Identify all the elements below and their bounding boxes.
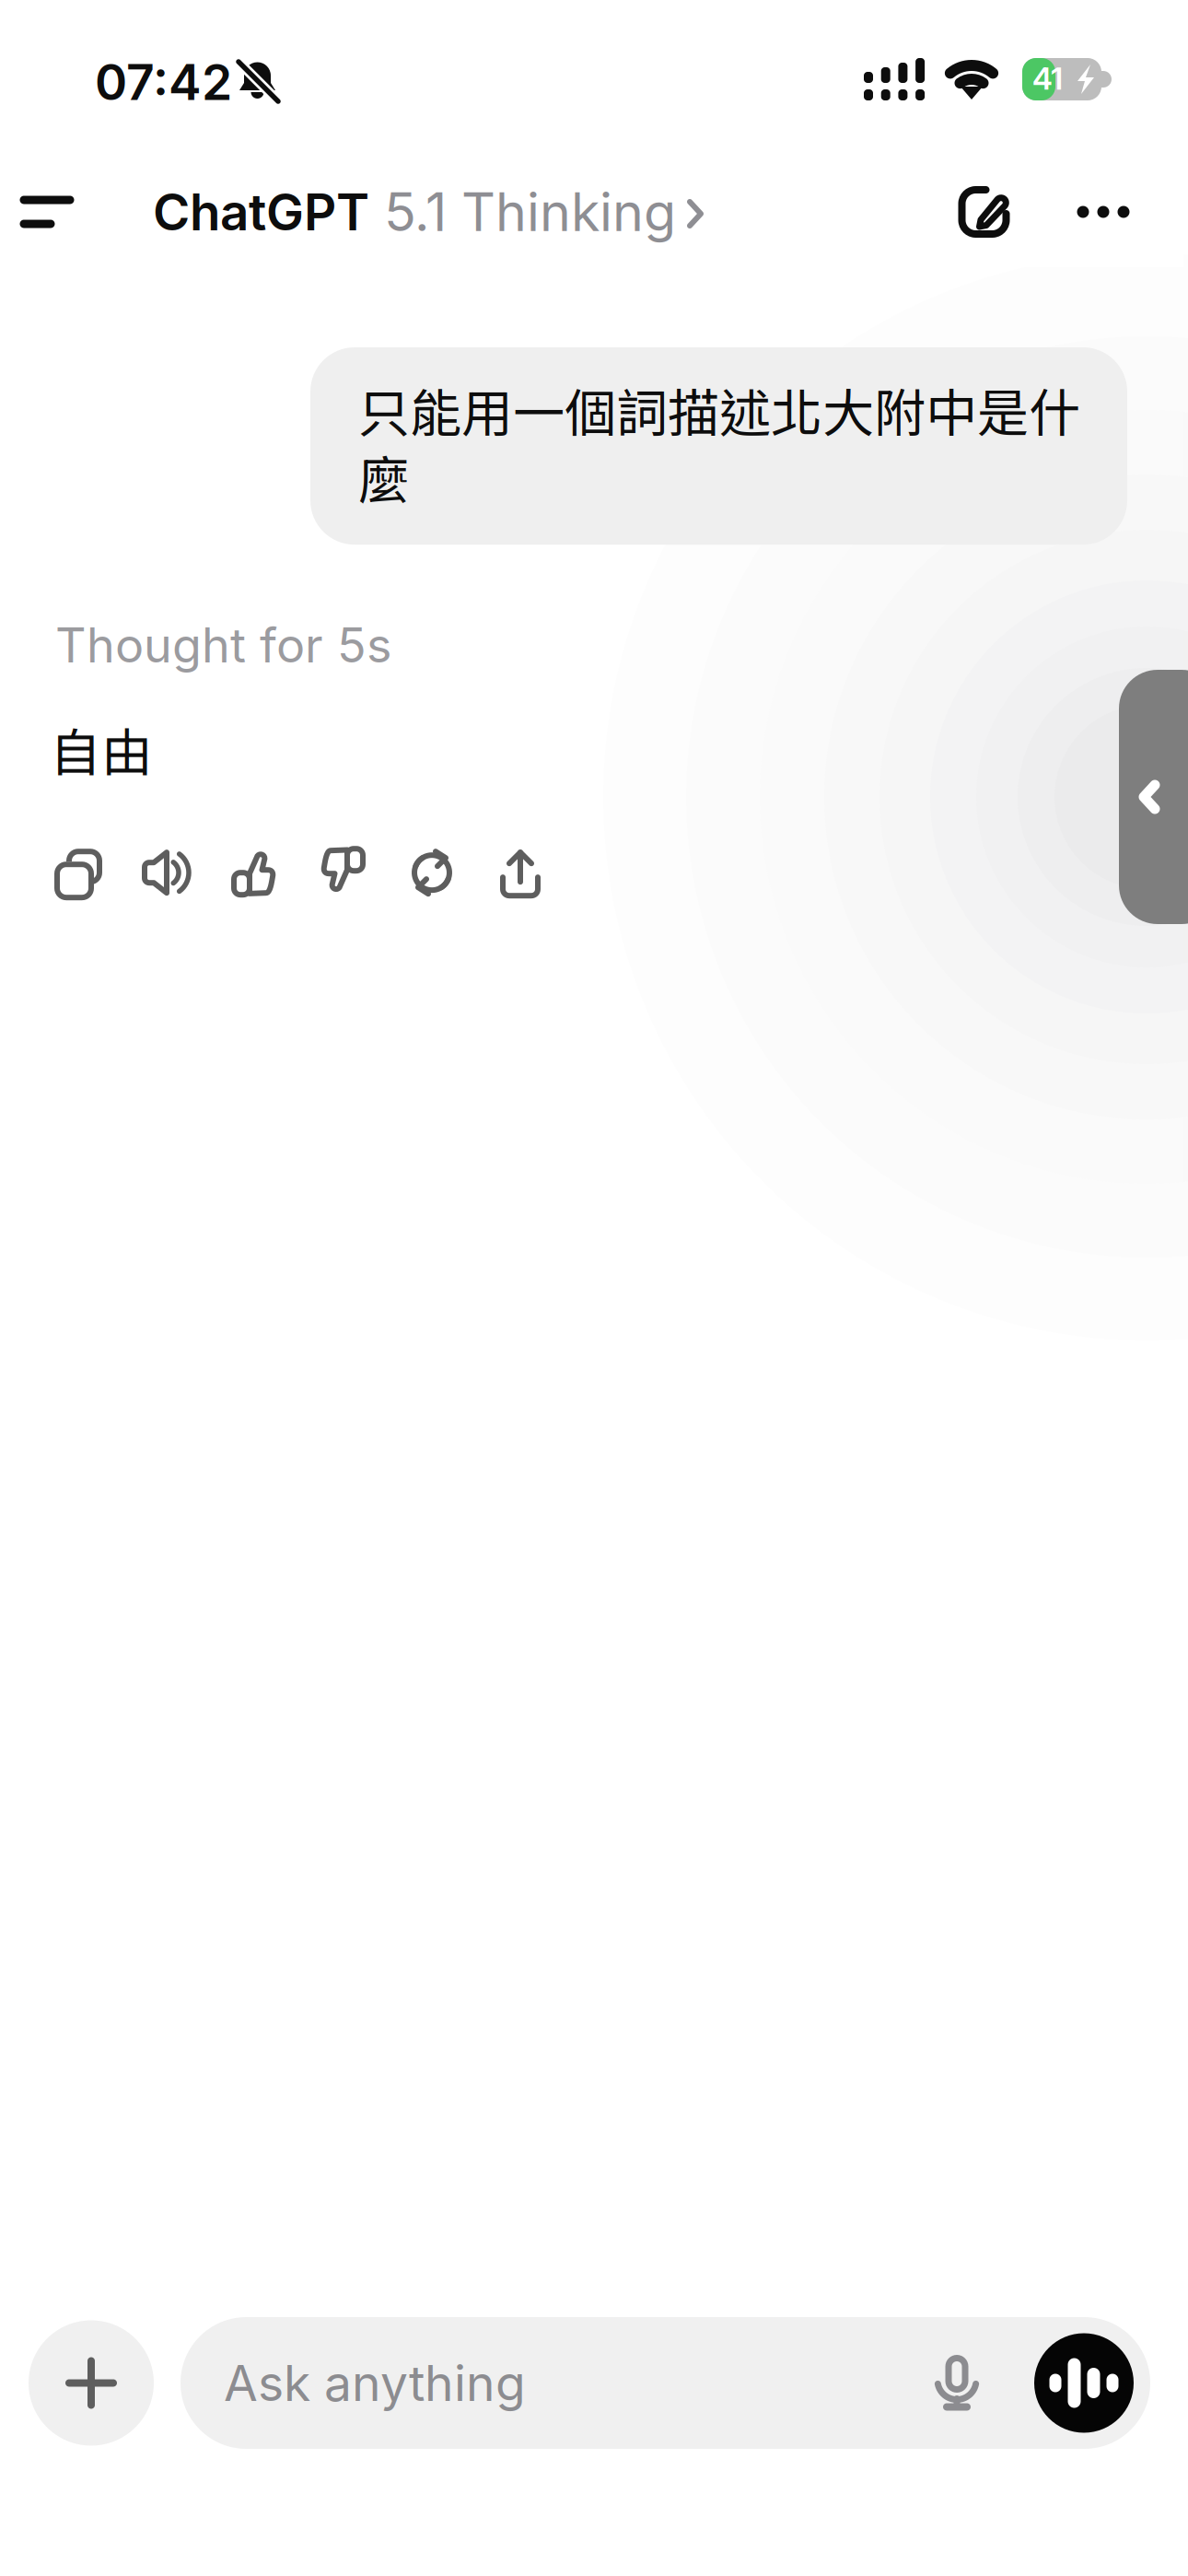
button[interactable]: Share	[476, 838, 565, 908]
button[interactable]: Regenerate	[388, 838, 476, 908]
staticText: Ask anything	[224, 2353, 526, 2413]
button[interactable]: Open canvas	[1119, 670, 1188, 924]
staticText: 41	[1032, 60, 1063, 97]
button[interactable]: New chat	[934, 157, 1035, 267]
staticText: ChatGPT	[153, 181, 369, 242]
button[interactable]: Bad response	[299, 838, 388, 908]
staticText: 5.1 Thinking	[369, 180, 676, 244]
button[interactable]: Sidebar	[0, 157, 102, 267]
button[interactable]: Good response	[211, 838, 299, 908]
staticText: Thought for 5s	[55, 616, 391, 674]
staticText: 07:42	[95, 52, 232, 112]
button[interactable]: Ask anything	[181, 2317, 1150, 2449]
button[interactable]: ChatGPT	[153, 157, 718, 267]
button[interactable]: Add attachment	[29, 2320, 154, 2446]
staticText: 只能用一個詞描述北大附中是什麼	[358, 372, 1080, 514]
button[interactable]: More options	[1053, 157, 1154, 267]
staticText: 自由	[50, 712, 153, 787]
button[interactable]: Read aloud	[122, 838, 211, 908]
button[interactable]: Copy	[34, 838, 122, 908]
